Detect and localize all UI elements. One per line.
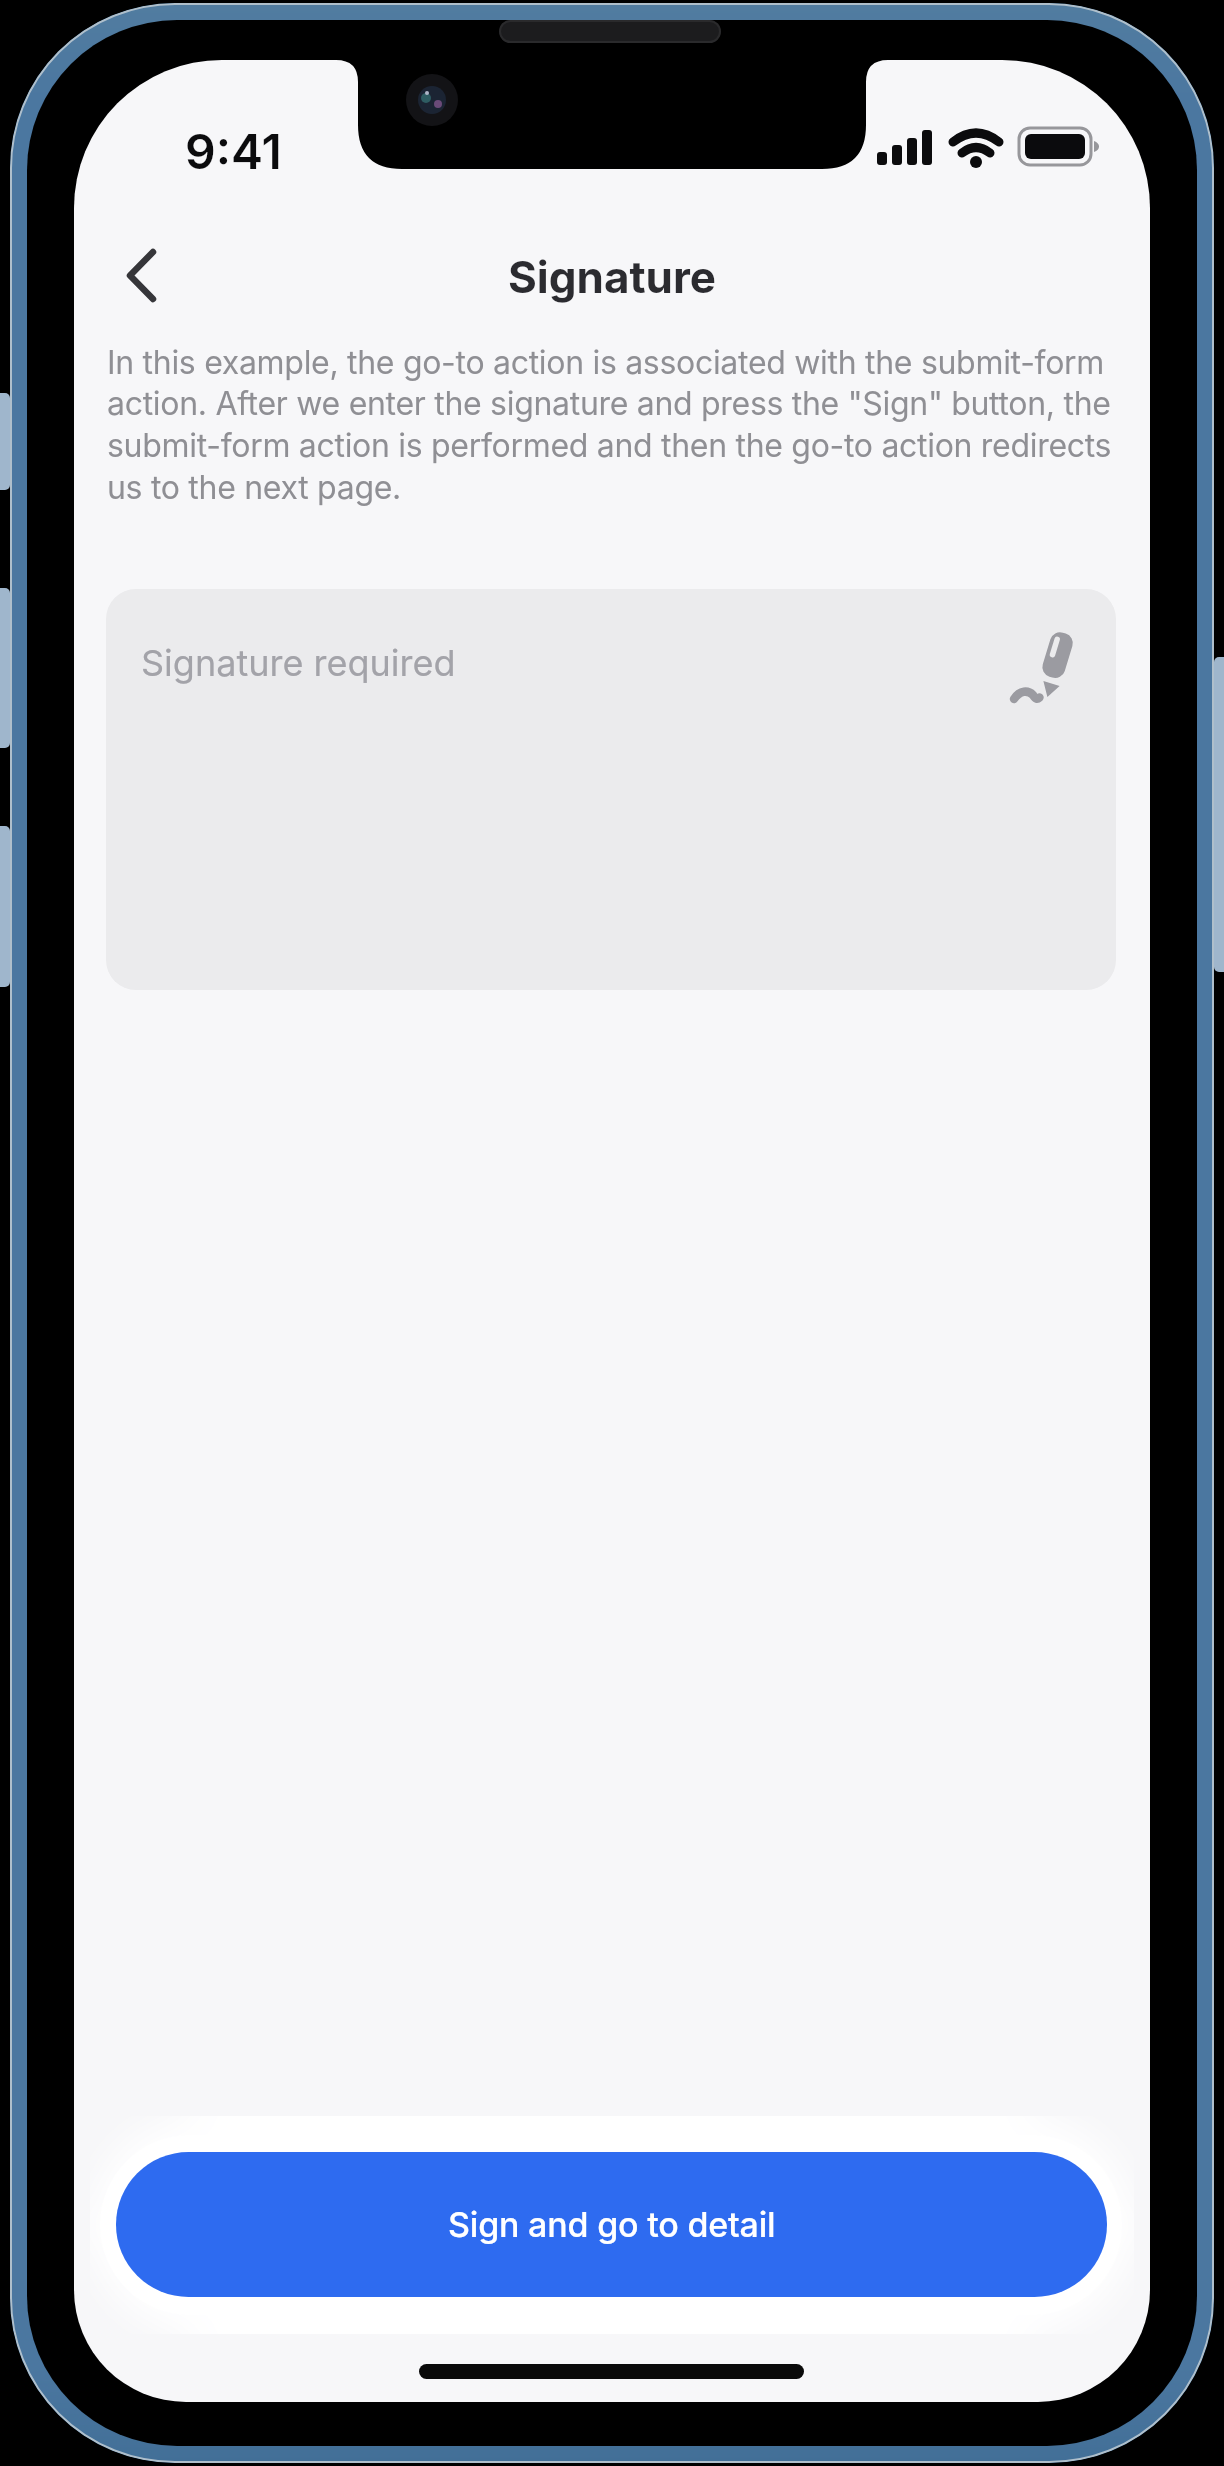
button[interactable]: Sign and go to detail: [116, 2152, 1107, 2297]
staticText: 9:41: [185, 122, 282, 174]
button[interactable]: [110, 232, 174, 320]
staticText: Signature required: [141, 641, 456, 685]
staticText: Sign and go to detail: [448, 2204, 776, 2245]
button[interactable]: Signature required: [106, 589, 1116, 990]
staticText: Signature: [508, 250, 717, 303]
staticText: In this example, the go-to action is ass…: [107, 343, 1112, 507]
